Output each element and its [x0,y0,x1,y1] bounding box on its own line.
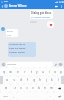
staticText: r [24,70,26,74]
staticText: j [46,78,47,82]
button[interactable]: a [3,76,10,84]
staticText: Dialog got bless it [31,11,52,15]
staticText: l [58,78,59,82]
staticText: @ Crafted Tuesday [31,16,51,18]
staticText: i [49,70,50,74]
staticText: z [14,86,16,90]
button[interactable]: k [49,76,55,84]
staticText: have the whole [9,47,26,50]
staticText: w [9,70,12,74]
staticText: , [13,94,14,98]
button[interactable] [54,84,64,92]
button[interactable]: ?123 [0,92,10,100]
button[interactable]: q [0,67,7,76]
button[interactable]: i [46,67,52,76]
staticText: y [36,70,38,74]
staticText: d [20,78,22,82]
staticText: c [26,86,28,90]
button[interactable]: m [48,84,54,92]
button[interactable]: d [17,76,24,84]
button[interactable]: Attach [53,62,58,67]
staticText: chapter please [9,51,25,54]
button[interactable]: b [36,84,42,92]
staticText: g [33,78,35,82]
staticText: m [50,86,53,90]
button[interactable] [54,92,64,100]
button[interactable]: Emoji [1,62,6,67]
button[interactable]: Camera [58,62,63,67]
staticText: n [44,86,46,90]
button[interactable]: I'd really like to [8,42,36,57]
staticText: Message [7,63,17,66]
staticText: o [54,70,56,74]
staticText: ?123 [3,95,8,98]
button[interactable]: Like reaction [47,21,54,28]
staticText: k [51,78,53,82]
button[interactable]: More options [59,3,63,9]
button[interactable]: o [52,67,58,76]
button[interactable]: w [7,67,14,76]
staticText: of the book [7,30,17,33]
button[interactable] [0,84,11,92]
button[interactable]: . [47,92,54,100]
button[interactable]: g [31,76,37,84]
button[interactable]: u [40,67,46,76]
staticText: f [27,78,28,82]
button[interactable]: v [30,84,36,92]
button[interactable]: Video call [54,3,59,9]
staticText: x [20,86,22,90]
staticText: h [39,78,41,82]
button[interactable]: x [18,84,24,92]
staticText: 9:41 [4,0,9,3]
button[interactable]: p [58,67,64,76]
staticText: q [3,70,5,74]
button[interactable]: r [21,67,28,76]
staticText: t [31,70,32,74]
staticText: u [42,70,44,74]
button[interactable]: e [14,67,21,76]
staticText: b [38,86,40,90]
button[interactable]: z [11,84,18,92]
button[interactable]: l [55,76,61,84]
staticText: e [17,70,19,74]
button[interactable]: y [34,67,40,76]
button[interactable]: t [28,67,34,76]
staticText: Emma Wilson [9,4,27,8]
staticText: a [6,78,8,82]
button[interactable]: h [37,76,43,84]
staticText: I'd really like to [9,43,26,46]
button[interactable]: Dialog got bless it [30,10,53,19]
button[interactable]: c [24,84,30,92]
button[interactable]: , [10,92,17,100]
staticText: 2 pm [7,34,12,36]
button[interactable]: of the book [6,29,18,37]
button[interactable]: n [42,84,48,92]
button[interactable]: j [43,76,49,84]
button[interactable]: s [10,76,17,84]
staticText: s [13,78,15,82]
button[interactable]: Back [0,3,4,9]
staticText: v [32,86,34,90]
staticText: p [60,70,62,74]
button[interactable]: f [24,76,31,84]
button[interactable]: Message [6,62,53,67]
staticText: . [50,94,51,98]
